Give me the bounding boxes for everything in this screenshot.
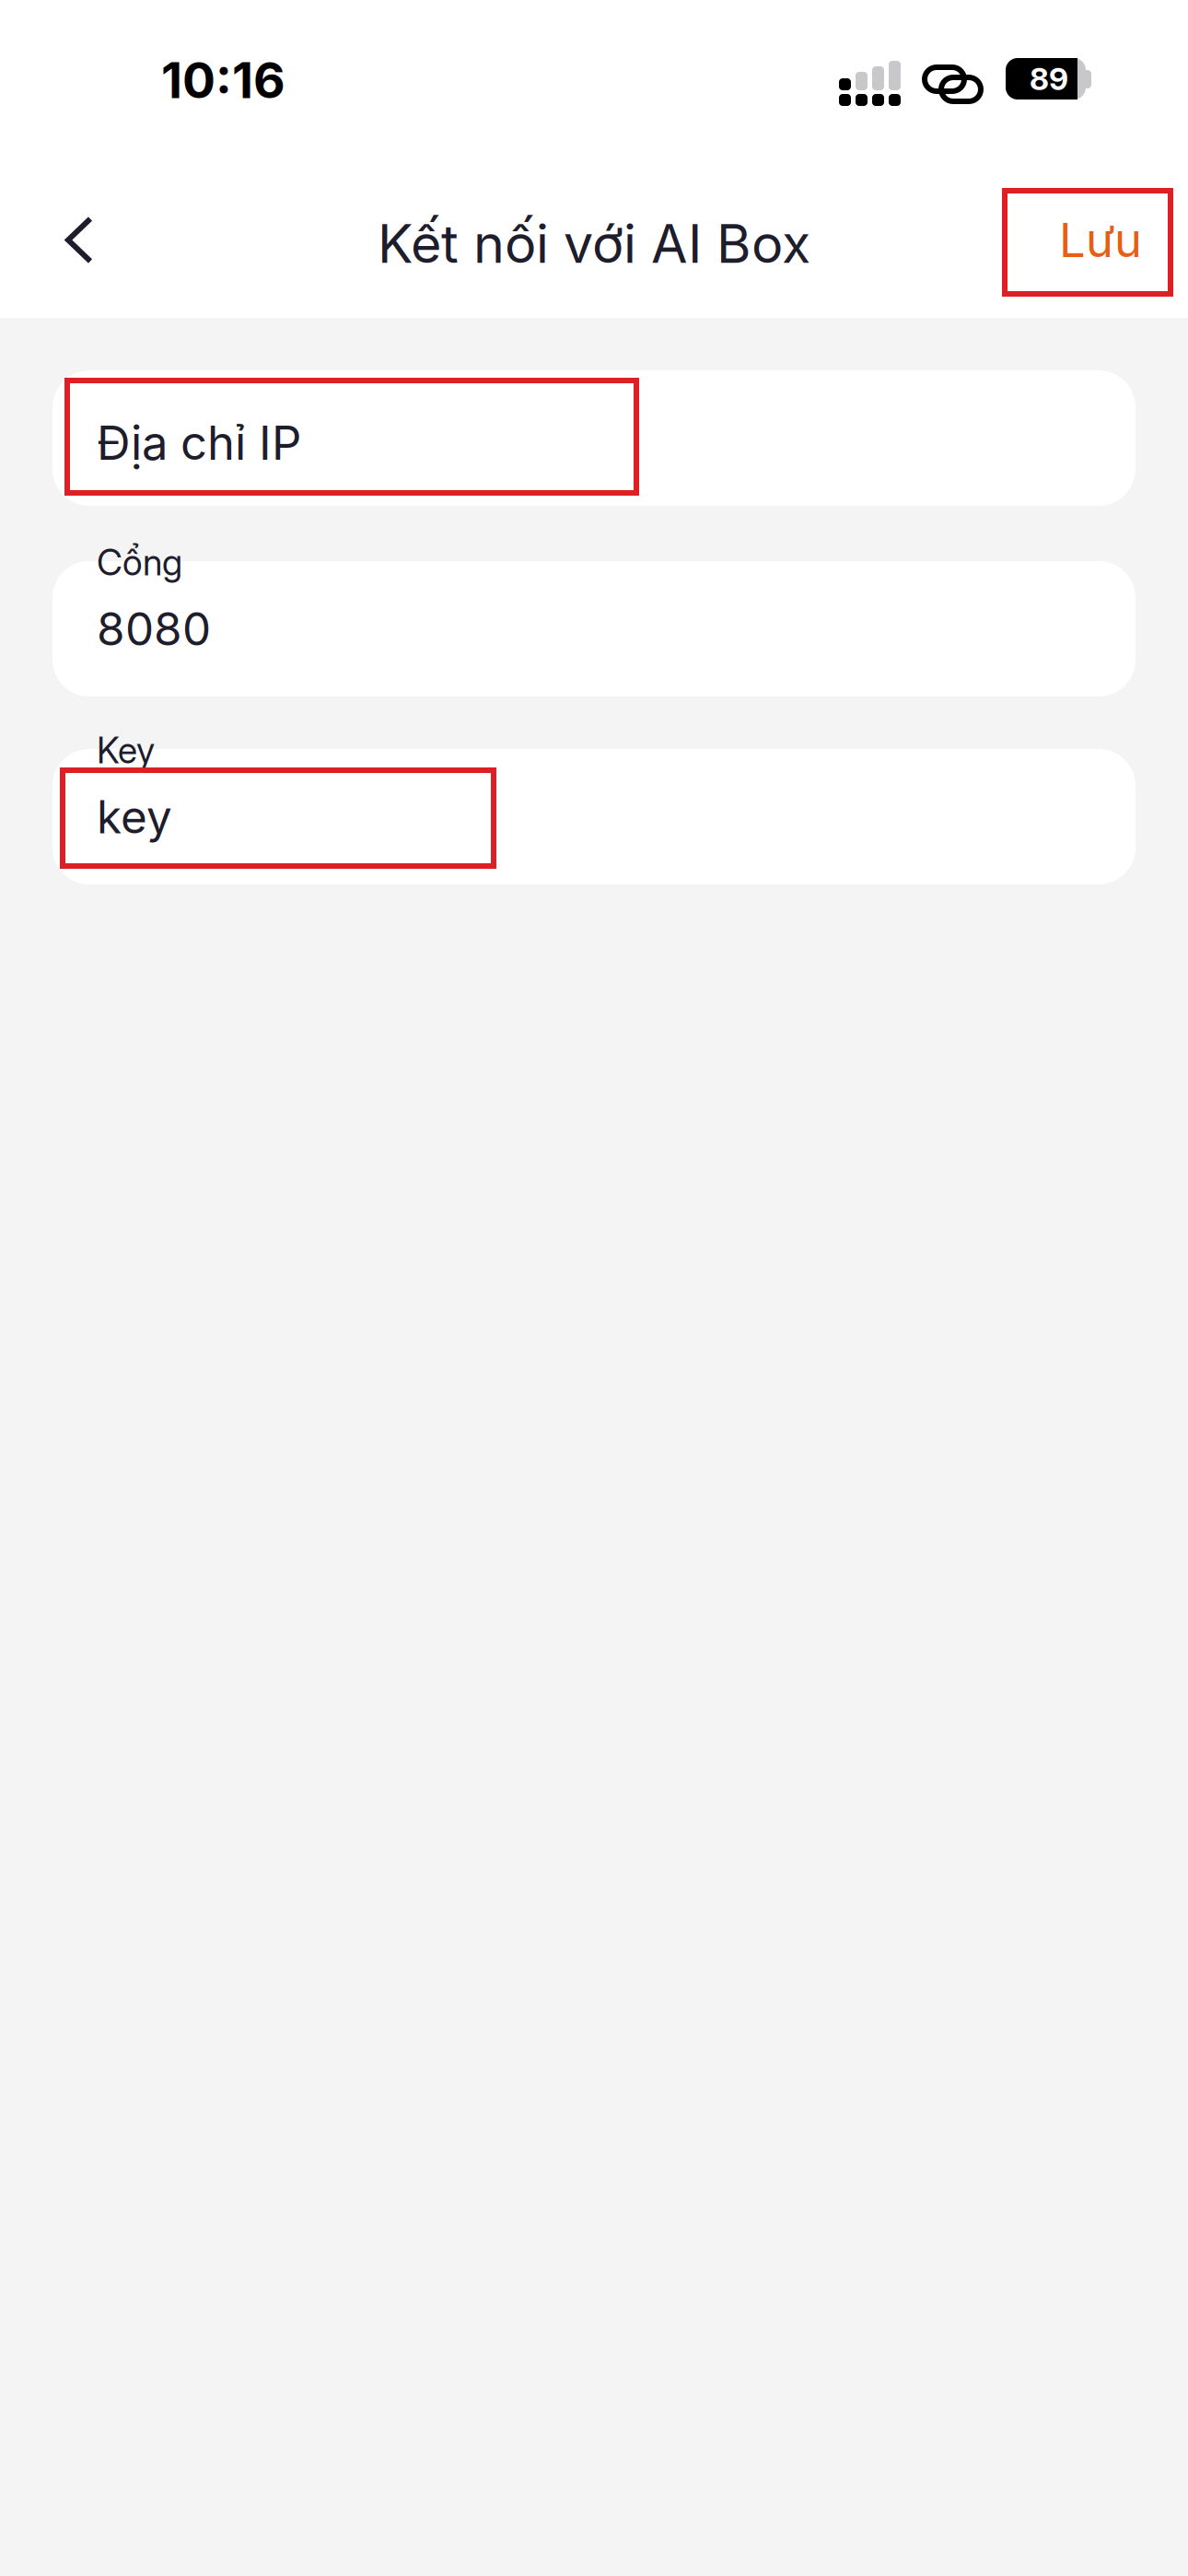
button[interactable]: Cổng — [52, 518, 1136, 697]
staticText: Địa chỉ IP — [97, 414, 301, 471]
button[interactable]: Key — [52, 706, 1136, 884]
staticText: Lưu — [1059, 212, 1142, 268]
button[interactable]: Địa chỉ IP — [52, 370, 1136, 506]
staticText: 10:16 — [161, 50, 285, 110]
staticText: Key — [97, 729, 155, 772]
button[interactable]: Lưu — [1018, 188, 1183, 292]
staticText: 89 — [1030, 60, 1068, 97]
staticText: key — [97, 789, 172, 844]
staticText: Kết nối với AI Box — [378, 212, 810, 276]
staticText: 8080 — [97, 601, 211, 656]
button[interactable]: Back — [34, 187, 124, 293]
staticText: Cổng — [97, 541, 182, 584]
